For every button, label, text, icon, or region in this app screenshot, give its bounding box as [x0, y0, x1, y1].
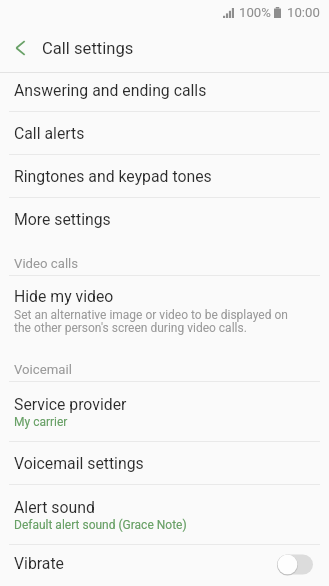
button[interactable]: Ringtones and keypad tones [0, 155, 329, 197]
staticText: Alert sound [14, 498, 95, 517]
button[interactable]: Voicemail settings [0, 442, 329, 484]
staticText: Voicemail settings [14, 454, 144, 473]
staticText: 100% [239, 5, 271, 20]
button[interactable]: Call alerts [0, 112, 329, 154]
staticText: More settings [14, 210, 111, 229]
staticText: Video calls [14, 256, 79, 271]
staticText: My carrier [14, 415, 68, 429]
button[interactable]: Vibrate [0, 545, 329, 582]
staticText: Service provider [14, 395, 127, 414]
staticText: Call alerts [14, 124, 85, 143]
staticText: Hide my video [14, 287, 114, 306]
button[interactable]: Hide my video [0, 276, 329, 346]
staticText: Set an alternative image or video to be … [14, 308, 288, 335]
button[interactable]: Answering and ending calls [0, 73, 329, 111]
button[interactable]: Alert sound [0, 485, 329, 544]
staticText: Default alert sound (Grace Note) [14, 518, 187, 532]
staticText: Call settings [42, 39, 134, 58]
button[interactable]: Navigate up [0, 28, 40, 68]
staticText: Vibrate [14, 554, 64, 573]
button[interactable]: Service provider [0, 382, 329, 441]
button[interactable]: More settings [0, 198, 329, 240]
staticText: Answering and ending calls [14, 81, 207, 100]
staticText: Ringtones and keypad tones [14, 167, 212, 186]
staticText: 10:00 [287, 5, 320, 20]
staticText: Voicemail [14, 362, 72, 377]
